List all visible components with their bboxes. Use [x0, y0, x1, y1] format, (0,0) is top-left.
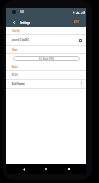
staticText: V1.2.0: [12, 73, 18, 77]
button[interactable]: Build Number: [6, 80, 86, 88]
button[interactable]: E.G. Mindy_POTA: [13, 56, 80, 61]
staticText: Build Number: [12, 82, 25, 86]
button[interactable]: APPLY: [72, 18, 82, 26]
button[interactable]: Recents: [64, 164, 74, 174]
button[interactable]: Back: [19, 164, 29, 174]
button[interactable]: Home: [41, 164, 51, 174]
staticText: 1:33: [20, 10, 24, 14]
staticText: APPLY: [74, 20, 80, 24]
staticText: Settings: [20, 20, 30, 25]
button[interactable]: Back: [10, 18, 18, 26]
button[interactable]: V1.2.0: [6, 71, 86, 79]
staticText: 1: [81, 82, 82, 86]
staticText: Filter By: [12, 29, 20, 33]
staticText: Name: [12, 48, 18, 52]
staticText: About: [12, 65, 18, 69]
staticText: E.G. Mindy_POTA: [39, 57, 54, 61]
button[interactable]: unseen (C 0xxD6C): [6, 35, 86, 45]
staticText: unseen (C 0xxD6C): [12, 38, 29, 42]
